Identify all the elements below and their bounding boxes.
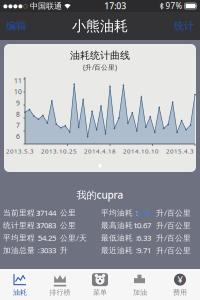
staticText: 升 (60, 245, 68, 255)
staticText: 油耗 (13, 288, 27, 297)
staticText: 最近油耗： (101, 245, 141, 255)
staticText: 中国联通 (28, 1, 62, 11)
staticText: 2014.4.18 (84, 147, 116, 155)
staticText: 费用 (173, 288, 187, 297)
button[interactable]: 编辑 (2, 12, 30, 40)
staticText: 8.16 (137, 208, 151, 218)
staticText: 最低油耗： (101, 233, 141, 243)
button[interactable]: 菜单 (80, 269, 120, 300)
staticText: 小熊油耗 (72, 17, 128, 35)
staticText: 37083 (36, 220, 56, 231)
staticText: 公里 (60, 208, 76, 218)
button[interactable]: 油耗 (0, 269, 40, 300)
staticText: 排行榜 (49, 288, 70, 297)
staticText: 编辑 (6, 20, 26, 32)
staticText: ¥ (177, 273, 182, 286)
staticText: 9.71 (137, 245, 151, 256)
staticText: 2013.10.25 (41, 147, 77, 155)
staticText: 公里/天 (60, 233, 87, 243)
staticText: ●●●● (3, 3, 23, 9)
staticText: 9 (16, 98, 20, 107)
staticText: 3033 (40, 245, 56, 256)
staticText: 升/百公里 (156, 245, 191, 256)
staticText: 升/百公里 (156, 220, 191, 231)
staticText: 我的cupra (76, 188, 123, 202)
staticText: 公里 (60, 220, 76, 230)
staticText: 37144 (36, 208, 56, 218)
staticText: 统计里程： (3, 220, 43, 230)
staticText: 6.33 (137, 233, 151, 243)
staticText: 97% (163, 1, 182, 11)
staticText: 统计 (174, 20, 194, 32)
staticText: 升/百公里 (156, 208, 191, 218)
button[interactable]: ¥ (160, 269, 200, 300)
staticText: 11 (14, 76, 22, 85)
staticText: 菜单 (93, 288, 107, 297)
staticText: 平均油耗： (101, 208, 141, 218)
button[interactable]: 统计 (170, 12, 198, 40)
staticText: 2015.4.3 (166, 147, 194, 155)
staticText: 7 (16, 121, 20, 130)
staticText: 当前里程： (3, 208, 43, 218)
staticText: 2013.5.3 (6, 147, 34, 155)
staticText: 10 (14, 87, 22, 96)
staticText: 2014.10.10 (123, 147, 159, 155)
staticText: 8 (16, 110, 20, 119)
staticText: 10.67 (133, 220, 151, 231)
staticText: 17:03 (104, 0, 126, 12)
staticText: 油耗统计曲线 (70, 49, 130, 62)
staticText: 升/百公里 (156, 233, 191, 243)
staticText: 平均里程： (3, 233, 43, 243)
button[interactable]: 加油 (120, 269, 160, 300)
staticText: ○ (23, 3, 28, 9)
staticText: (升/百公里) (83, 63, 117, 72)
staticText: 54.25 (38, 233, 56, 243)
staticText: 加油总量： (3, 245, 43, 255)
staticText: 6 (16, 132, 20, 141)
staticText: 加油 (133, 288, 147, 297)
staticText: 最高油耗： (101, 220, 141, 230)
button[interactable]: 排行榜 (40, 269, 80, 300)
